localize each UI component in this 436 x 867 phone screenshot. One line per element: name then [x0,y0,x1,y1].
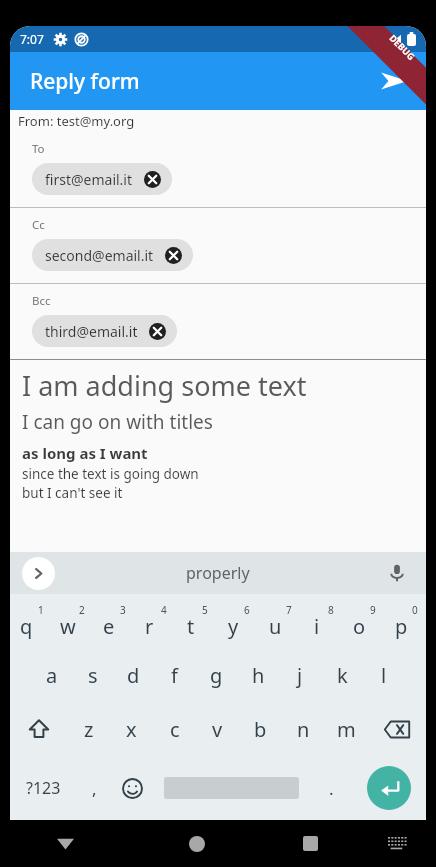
staticText: 0 [412,603,418,617]
staticText: l [381,662,387,689]
button[interactable]: Voice input [382,558,412,588]
staticText: DEBUG [387,32,418,62]
staticText: 9 [370,603,376,617]
button[interactable]: Back [0,820,131,867]
button[interactable]: Recents [262,820,358,867]
staticText: e [103,613,115,640]
button[interactable]: ?123 [10,756,77,820]
button[interactable]: i [300,594,342,648]
staticText: b [254,716,267,743]
staticText: I am adding some text [22,367,307,404]
staticText: . [329,777,334,800]
button[interactable]: Shift [10,702,67,756]
staticText: g [210,662,223,689]
staticText: since the text is going down [22,465,199,483]
staticText: t [187,613,195,640]
button[interactable]: w [51,594,92,648]
button[interactable]: h [237,648,279,702]
button[interactable]: More suggestions [22,557,55,590]
button[interactable]: s [72,648,113,702]
staticText: k [337,662,348,689]
staticText: i [314,613,320,640]
button[interactable]: f [154,648,195,702]
staticText: j [297,662,303,689]
button[interactable]: n [282,702,325,756]
staticText: second@email.it [45,246,154,265]
staticText: , [92,777,97,800]
button[interactable]: third@email.it [32,315,177,347]
staticText: r [145,613,154,640]
staticText: I can go on with titles [22,409,213,435]
staticText: 1 [38,603,44,617]
button[interactable]: t [174,594,216,648]
other: Remove first@email.it [144,171,161,188]
button[interactable]: m [325,702,368,756]
button[interactable] [152,756,311,820]
button[interactable]: Backspace [368,702,426,756]
button[interactable]: Send [372,59,416,103]
button[interactable]: properly [186,562,250,584]
staticText: f [171,662,178,689]
button[interactable]: j [279,648,321,702]
button[interactable]: q [10,594,51,648]
staticText: as long as I want [22,443,148,463]
button[interactable]: v [196,702,239,756]
button[interactable]: p [384,594,426,648]
staticText: c [170,716,180,743]
button[interactable]: d [113,648,154,702]
button[interactable]: l [363,648,405,702]
button[interactable]: u [258,594,300,648]
button[interactable]: k [321,648,363,702]
button[interactable]: Enter [367,766,411,810]
button[interactable]: r [133,594,174,648]
button[interactable]: To [10,132,426,207]
staticText: u [269,613,282,640]
staticText: 2 [79,603,85,617]
button[interactable]: g [195,648,237,702]
button[interactable]: . [311,756,351,820]
staticText: To [32,141,45,157]
staticText: first@email.it [45,170,133,189]
button[interactable]: b [239,702,282,756]
button[interactable]: y [216,594,258,648]
button[interactable]: Cc [10,208,426,283]
button[interactable]: c [153,702,196,756]
staticText: x [126,716,137,743]
button[interactable]: o [342,594,384,648]
other: Remove third@email.it [149,323,166,340]
staticText: ?123 [26,777,61,799]
button[interactable]: e [92,594,133,648]
staticText: Cc [32,217,45,233]
staticText: z [84,716,94,743]
button[interactable]: x [110,702,153,756]
staticText: 3 [120,603,126,617]
button[interactable]: a [31,648,72,702]
button[interactable]: first@email.it [32,163,172,195]
button[interactable]: Home [131,820,262,867]
button[interactable]: Switch keyboard [358,820,436,867]
other: Remove second@email.it [165,247,182,264]
staticText: 8 [328,603,334,617]
button[interactable]: second@email.it [32,239,193,271]
button[interactable]: Bcc [10,284,426,359]
button[interactable]: z [67,702,110,756]
staticText: h [252,662,265,689]
staticText: Bcc [32,293,51,309]
staticText: v [212,716,223,743]
staticText: 6 [244,603,250,617]
staticText: third@email.it [45,322,138,341]
staticText: From: test@my.org [18,112,135,130]
staticText: s [88,662,98,689]
staticText: p [395,613,408,640]
button[interactable]: Emoji [112,756,152,820]
staticText: but I can't see it [22,484,123,502]
staticText: a [46,662,58,689]
staticText: 7 [286,603,292,617]
staticText: o [353,613,366,640]
staticText: y [228,613,239,640]
staticText: Reply form [30,67,140,96]
staticText: 7:07 [20,31,44,47]
button[interactable]: , [77,756,112,820]
staticText: 4 [161,603,167,617]
staticText: 5 [202,603,208,617]
